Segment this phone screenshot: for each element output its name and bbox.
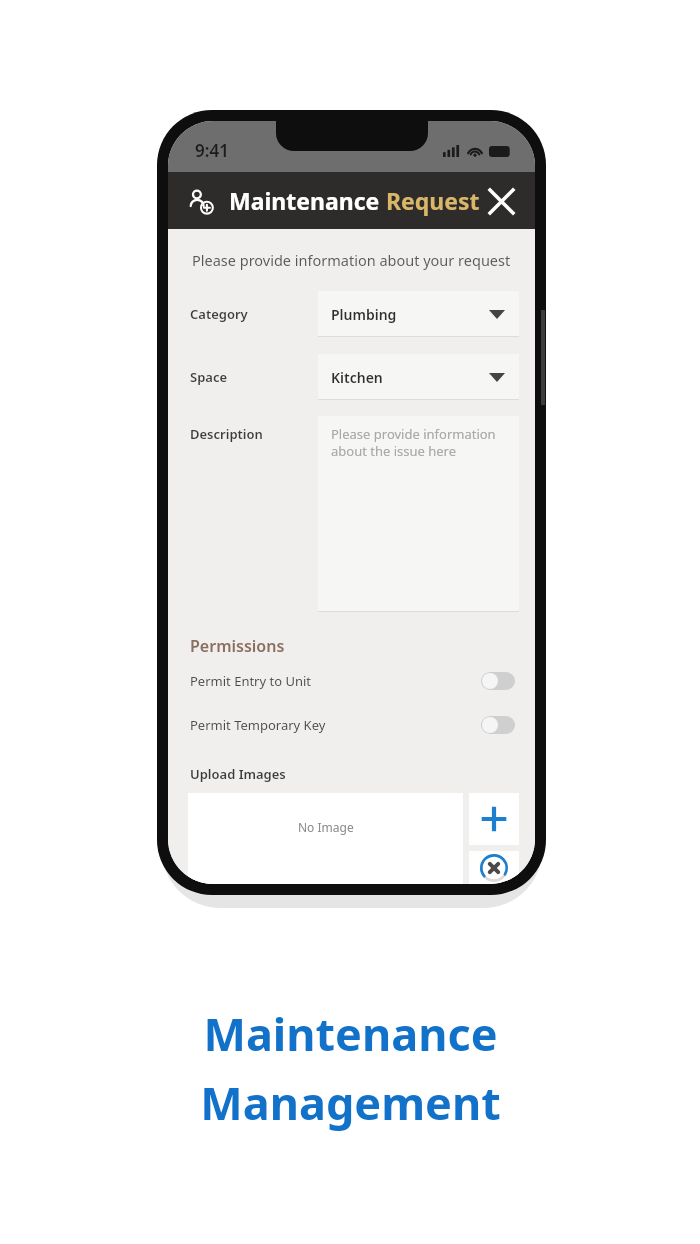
- button[interactable]: Plumbing: [318, 291, 519, 337]
- staticText: Please provide information about your re…: [192, 250, 511, 270]
- button[interactable]: Please provide information about the iss…: [318, 416, 519, 612]
- staticText: Category: [190, 305, 248, 323]
- staticText: Plumbing: [331, 305, 397, 324]
- staticText: Maintenance: [203, 1003, 498, 1064]
- staticText: Upload Images: [190, 765, 286, 783]
- staticText: Description: [190, 425, 263, 443]
- button[interactable]: Close: [480, 180, 522, 222]
- staticText: No Image: [298, 819, 354, 835]
- button[interactable]: Permit Temporary Key: [168, 713, 535, 737]
- staticText: Management: [200, 1072, 501, 1133]
- button[interactable]: Add person: [180, 180, 222, 222]
- button[interactable]: Add image: [469, 793, 519, 845]
- button[interactable]: Permit Entry to Unit: [168, 669, 535, 693]
- staticText: Request: [386, 185, 480, 216]
- staticText: Permit Entry to Unit: [190, 672, 312, 690]
- button[interactable]: Remove image: [469, 851, 519, 884]
- staticText: Permit Temporary Key: [190, 716, 326, 734]
- staticText: 9:41: [195, 139, 229, 162]
- button[interactable]: Kitchen: [318, 354, 519, 400]
- staticText: Space: [190, 368, 228, 386]
- staticText: Please provide information about the iss…: [331, 425, 496, 460]
- staticText: Maintenance: [229, 185, 386, 216]
- staticText: Permissions: [190, 635, 285, 657]
- staticText: Kitchen: [331, 368, 383, 387]
